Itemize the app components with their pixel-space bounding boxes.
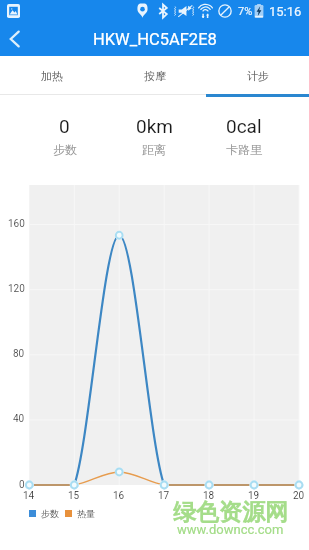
staticText: 0 (19, 479, 25, 491)
staticText: 20 (293, 490, 305, 502)
staticText: 步数 (53, 142, 77, 157)
staticText: 热量 (77, 508, 95, 519)
staticText: 19 (248, 490, 260, 502)
staticText: 7% (238, 5, 253, 18)
button[interactable]: 按摩 (103, 56, 206, 96)
staticText: 120 (8, 283, 25, 295)
button[interactable]: 0 (20, 96, 109, 185)
staticText: 计步 (247, 69, 269, 83)
staticText: 0cal (226, 115, 262, 137)
staticText: 绿色资源网 (173, 498, 288, 527)
button[interactable]: Back (0, 22, 28, 56)
button[interactable]: 0km (109, 96, 199, 185)
staticText: 17 (158, 490, 170, 502)
staticText: 0 (59, 115, 70, 137)
staticText: 14 (23, 490, 35, 502)
staticText: 加热 (41, 69, 63, 83)
button[interactable]: 加热 (0, 56, 103, 96)
staticText: 0km (136, 115, 173, 137)
staticText: 步数 (41, 508, 59, 519)
staticText: 卡路里 (226, 142, 262, 157)
staticText: 距离 (142, 142, 166, 157)
staticText: 16 (113, 490, 125, 502)
button[interactable]: 0cal (199, 96, 289, 185)
button[interactable]: 计步 (206, 56, 309, 96)
staticText: www.downcc.com (177, 522, 284, 537)
staticText: 15 (68, 490, 80, 502)
staticText: 160 (8, 218, 25, 230)
staticText: 80 (13, 348, 25, 360)
staticText: 18 (203, 490, 215, 502)
staticText: 按摩 (144, 69, 166, 83)
staticText: 40 (13, 413, 25, 425)
staticText: HKW_HC5AF2E8 (93, 30, 217, 49)
staticText: 15:16 (269, 4, 302, 19)
